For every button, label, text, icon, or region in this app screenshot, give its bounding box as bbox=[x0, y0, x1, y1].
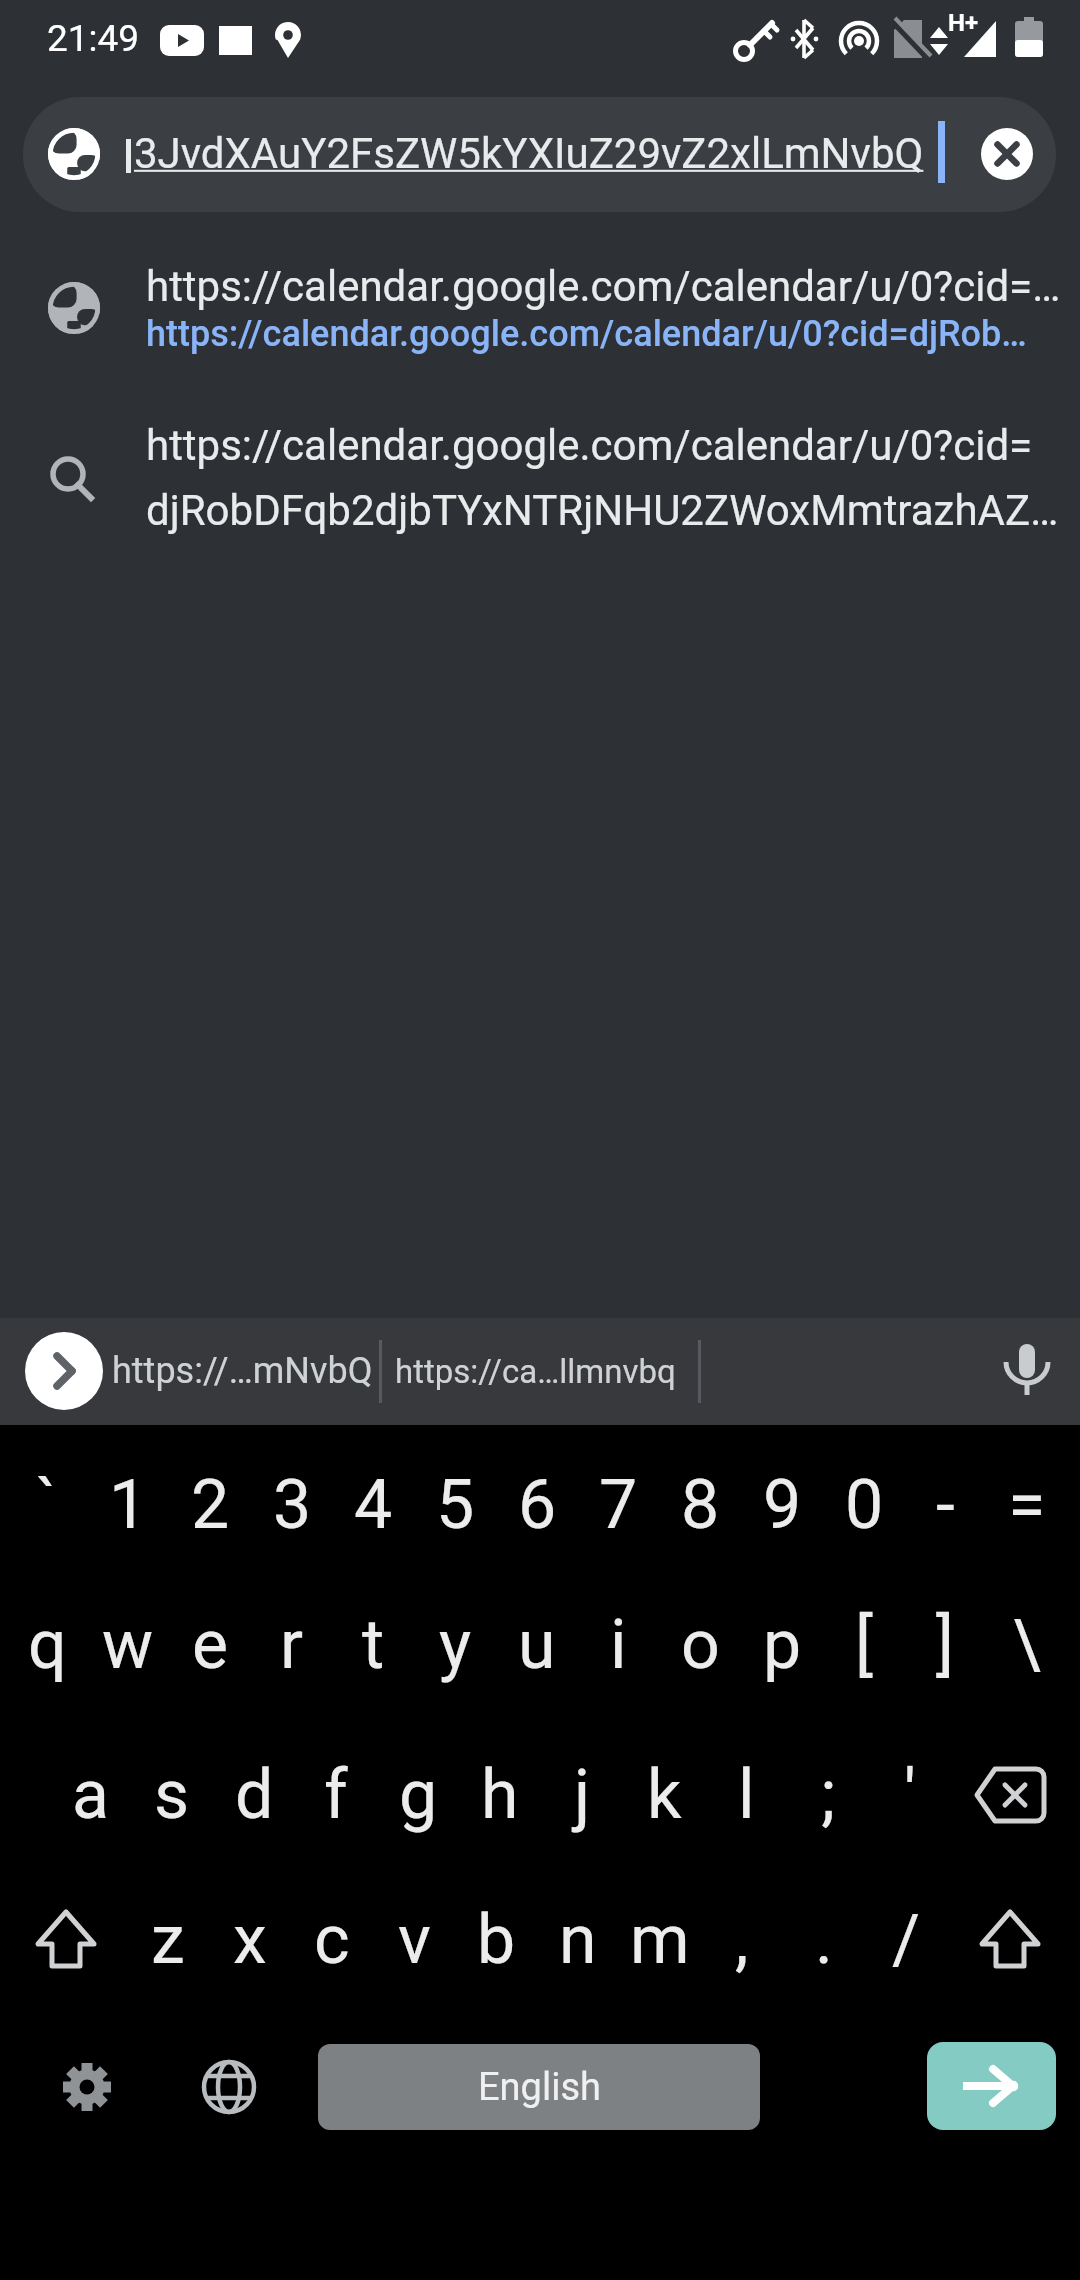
staticText: 8 bbox=[681, 1465, 720, 1545]
staticText: x bbox=[233, 1900, 267, 1980]
button[interactable] bbox=[981, 128, 1033, 180]
button[interactable]: ; bbox=[787, 1729, 869, 1861]
button[interactable] bbox=[972, 1755, 1054, 1835]
button[interactable]: 3 bbox=[251, 1439, 333, 1571]
button[interactable]: 0 bbox=[823, 1439, 905, 1571]
button[interactable] bbox=[25, 1332, 103, 1410]
button[interactable]: p bbox=[741, 1579, 823, 1711]
staticText: p bbox=[763, 1605, 802, 1685]
button[interactable]: q bbox=[6, 1579, 88, 1711]
button[interactable]: 5 bbox=[414, 1439, 496, 1571]
button[interactable] bbox=[995, 1332, 1059, 1410]
button[interactable]: s bbox=[131, 1729, 213, 1861]
button[interactable]: y bbox=[414, 1579, 496, 1711]
button[interactable]: . bbox=[783, 1874, 865, 2006]
staticText: ' bbox=[904, 1755, 916, 1835]
button[interactable] bbox=[199, 2057, 259, 2117]
staticText: 3 bbox=[273, 1465, 312, 1545]
staticText: h bbox=[481, 1755, 519, 1835]
button[interactable]: a bbox=[49, 1729, 131, 1861]
button[interactable]: ' bbox=[869, 1729, 951, 1861]
button[interactable] bbox=[0, 240, 1080, 365]
button[interactable]: - bbox=[904, 1439, 986, 1571]
button[interactable]: m bbox=[619, 1874, 701, 2006]
staticText: y bbox=[439, 1605, 472, 1685]
button[interactable] bbox=[23, 97, 1056, 212]
button[interactable]: b bbox=[455, 1874, 537, 2006]
staticText: \ bbox=[1013, 1605, 1041, 1685]
staticText: = bbox=[1008, 1465, 1046, 1545]
staticText: o bbox=[681, 1605, 720, 1685]
button[interactable]: i bbox=[577, 1579, 659, 1711]
button[interactable]: \ bbox=[986, 1579, 1068, 1711]
staticText: , bbox=[735, 1900, 749, 1980]
staticText: ] bbox=[936, 1605, 955, 1685]
staticText: 5 bbox=[436, 1465, 475, 1545]
staticText: - bbox=[936, 1465, 955, 1545]
staticText: https://calendar.google.com/calendar/u/0… bbox=[146, 262, 1061, 311]
button[interactable]: 7 bbox=[577, 1439, 659, 1571]
button[interactable]: 9 bbox=[741, 1439, 823, 1571]
button[interactable]: l bbox=[705, 1729, 787, 1861]
staticText: f bbox=[324, 1755, 348, 1835]
staticText: g bbox=[399, 1755, 438, 1835]
button[interactable] bbox=[24, 1908, 108, 1972]
button[interactable]: ] bbox=[904, 1579, 986, 1711]
staticText: H+ bbox=[948, 9, 979, 37]
button[interactable]: v bbox=[373, 1874, 455, 2006]
button[interactable]: o bbox=[659, 1579, 741, 1711]
button[interactable]: 1 bbox=[87, 1439, 169, 1571]
staticText: ; bbox=[821, 1755, 836, 1835]
button[interactable]: [ bbox=[823, 1579, 905, 1711]
button[interactable] bbox=[52, 2052, 122, 2122]
button[interactable]: g bbox=[377, 1729, 459, 1861]
staticText: q bbox=[28, 1605, 67, 1685]
button[interactable]: https://…mNvbQ bbox=[112, 1330, 378, 1412]
staticText: d bbox=[235, 1755, 274, 1835]
button[interactable]: x bbox=[209, 1874, 291, 2006]
button[interactable]: , bbox=[701, 1874, 783, 2006]
button[interactable]: 8 bbox=[659, 1439, 741, 1571]
staticText: . bbox=[815, 1900, 833, 1980]
staticText: 0 bbox=[845, 1465, 884, 1545]
button[interactable]: r bbox=[251, 1579, 333, 1711]
staticText: 2 bbox=[191, 1465, 230, 1545]
staticText: https://calendar.google.com/calendar/u/0… bbox=[146, 313, 1027, 355]
button[interactable]: e bbox=[169, 1579, 251, 1711]
staticText: j bbox=[574, 1755, 591, 1835]
button[interactable]: 6 bbox=[496, 1439, 578, 1571]
staticText: z bbox=[151, 1900, 185, 1980]
button[interactable]: h bbox=[459, 1729, 541, 1861]
staticText: https://calendar.google.com/calendar/u/0… bbox=[146, 421, 1033, 470]
button[interactable]: / bbox=[865, 1874, 947, 2006]
button[interactable]: c bbox=[291, 1874, 373, 2006]
staticText: u bbox=[518, 1605, 556, 1685]
staticText: e bbox=[192, 1605, 229, 1685]
button[interactable]: z bbox=[127, 1874, 209, 2006]
staticText: [ bbox=[855, 1605, 874, 1685]
staticText: i bbox=[610, 1605, 627, 1685]
button[interactable]: ` bbox=[6, 1439, 88, 1571]
staticText: r bbox=[280, 1605, 304, 1685]
button[interactable]: d bbox=[213, 1729, 295, 1861]
staticText: djRobDFqb2djbTYxNTRjNHU2ZWoxMmtrazhAZ… bbox=[146, 486, 1059, 535]
button[interactable]: English bbox=[318, 2044, 760, 2130]
button[interactable]: k bbox=[623, 1729, 705, 1861]
button[interactable]: https://ca…llmnvbq bbox=[395, 1330, 695, 1412]
staticText: English bbox=[478, 2065, 601, 2110]
button[interactable] bbox=[0, 405, 1080, 545]
staticText: https://ca…llmnvbq bbox=[395, 1352, 676, 1391]
button[interactable]: = bbox=[986, 1439, 1068, 1571]
button[interactable]: f bbox=[295, 1729, 377, 1861]
staticText: 3JvdXAuY2FsZW5kYXIuZ29vZ2xlLmNvbQ bbox=[134, 129, 924, 178]
button[interactable]: u bbox=[496, 1579, 578, 1711]
staticText: l bbox=[738, 1755, 755, 1835]
button[interactable] bbox=[927, 2042, 1056, 2130]
button[interactable]: j bbox=[541, 1729, 623, 1861]
button[interactable]: n bbox=[537, 1874, 619, 2006]
button[interactable]: 4 bbox=[332, 1439, 414, 1571]
button[interactable]: w bbox=[87, 1579, 169, 1711]
button[interactable] bbox=[968, 1908, 1052, 1972]
button[interactable]: 2 bbox=[169, 1439, 251, 1571]
button[interactable]: t bbox=[332, 1579, 414, 1711]
